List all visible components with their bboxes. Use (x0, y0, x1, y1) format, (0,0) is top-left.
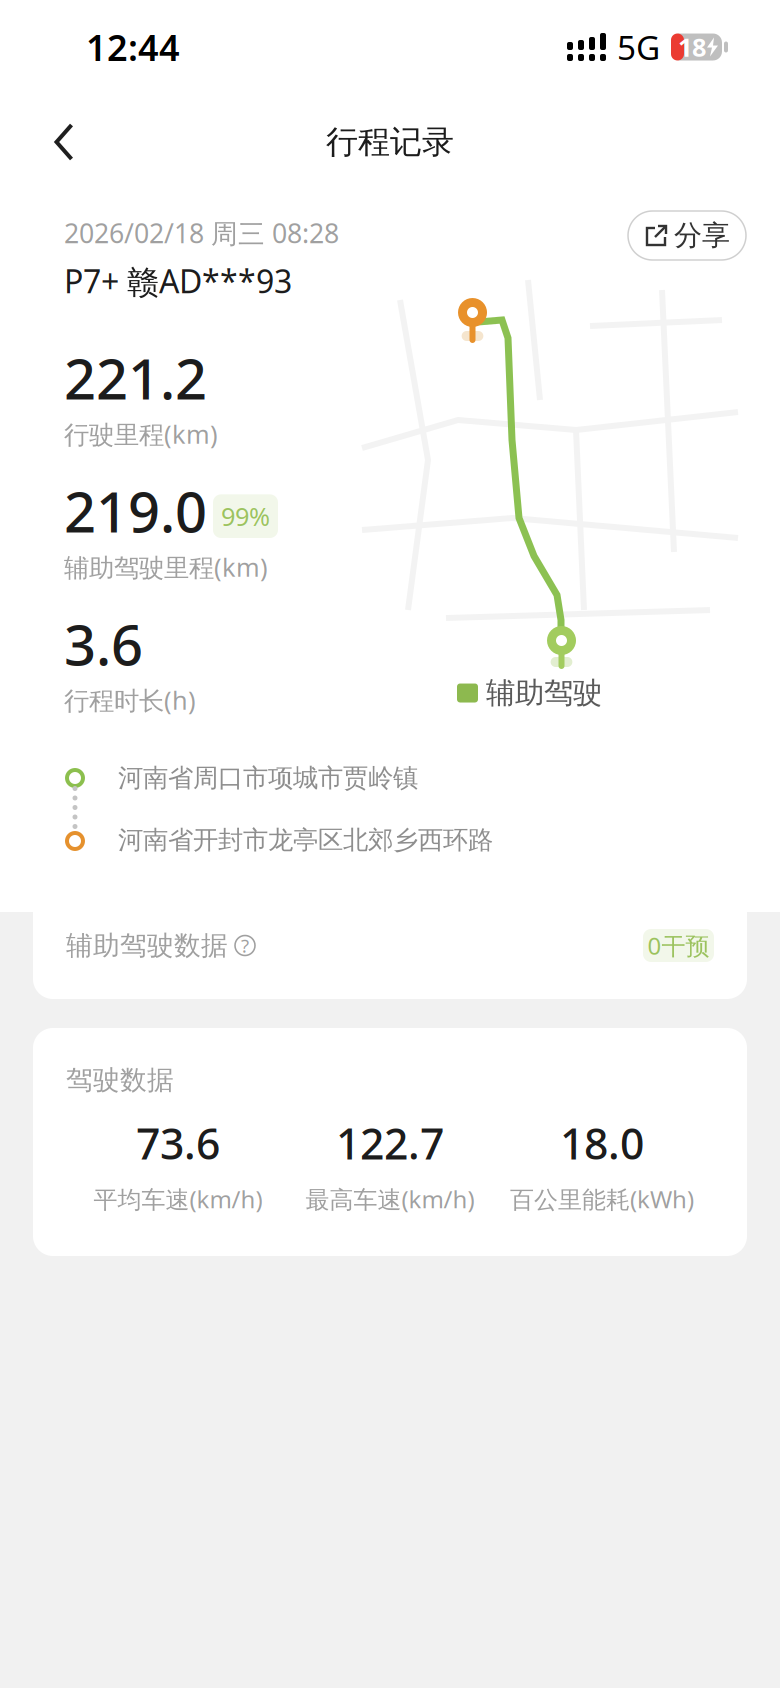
staticText: 2026/02/18 周三 08:28 (64, 215, 339, 251)
staticText: 百公里能耗(kWh) (510, 1183, 694, 1215)
staticText: 12:44 (86, 23, 180, 71)
staticText: 辅助驾驶数据 (66, 929, 228, 962)
staticText: 驾驶数据 (66, 1064, 174, 1096)
staticText: 辅助驾驶 (486, 675, 602, 711)
staticText: 5G (617, 25, 660, 69)
staticText: 平均车速(km/h) (93, 1183, 262, 1215)
staticText: 行驶里程(km) (64, 417, 218, 451)
staticText: 221.2 (64, 341, 207, 415)
staticText: 辅助驾驶里程(km) (64, 550, 268, 584)
staticText: 3.6 (64, 607, 143, 681)
button[interactable]: 返回 (26, 104, 102, 180)
staticText: 73.6 (136, 1115, 220, 1171)
button[interactable]: 分享 (628, 211, 746, 260)
staticText: 99% (221, 499, 270, 533)
staticText: 18.0 (560, 1115, 644, 1171)
staticText: 行程时长(h) (64, 683, 196, 717)
staticText: 河南省周口市项城市贾岭镇 (118, 762, 418, 793)
staticText: 分享 (674, 218, 730, 253)
staticText: 最高车速(km/h) (305, 1183, 474, 1215)
staticText: 219.0 (64, 474, 207, 548)
staticText: 18 (678, 30, 706, 64)
staticText: 122.7 (336, 1115, 444, 1171)
staticText: 行程记录 (326, 122, 454, 162)
staticText: P7+ 赣AD***93 (64, 260, 292, 302)
staticText: 0干预 (647, 930, 709, 961)
staticText: ? (241, 933, 249, 958)
staticText: 河南省开封市龙亭区北郊乡西环路 (118, 824, 493, 855)
button[interactable]: 辅助驾驶数据 (33, 892, 747, 999)
